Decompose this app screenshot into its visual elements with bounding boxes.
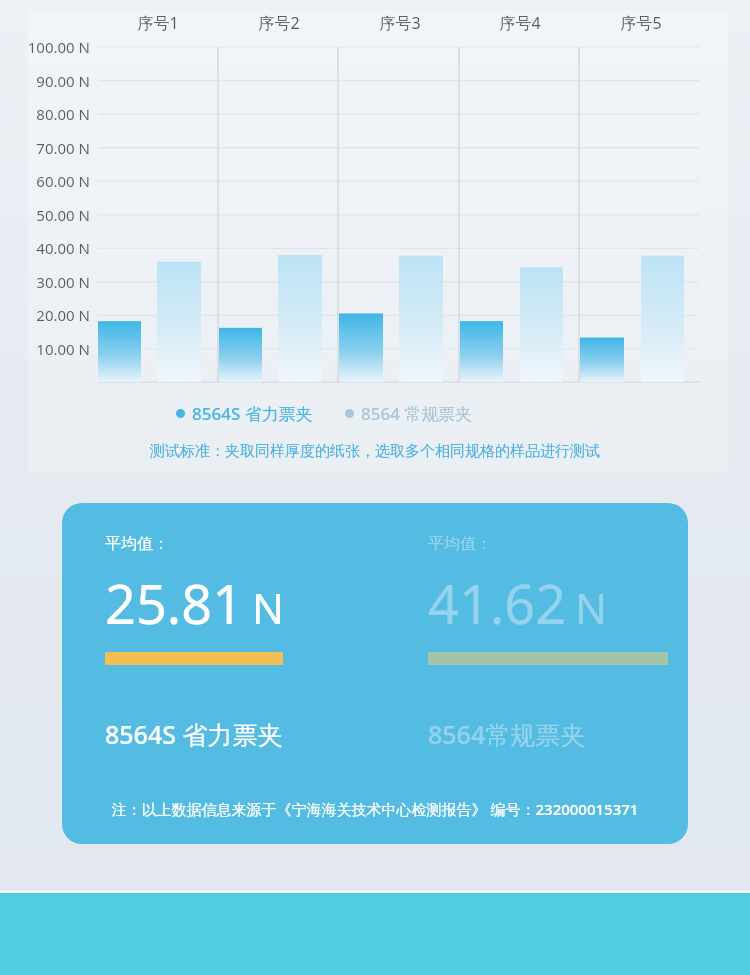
staticText: 90.00 N — [6, 71, 90, 91]
staticText: 41.62 — [428, 566, 567, 640]
staticText: 25.81 — [105, 566, 244, 640]
staticText: 50.00 N — [6, 205, 90, 225]
staticText: N — [575, 579, 607, 636]
staticText: 注：以上数据信息来源于《宁海海关技术中心检测报告》 编号：23200001537… — [62, 799, 688, 819]
staticText: 40.00 N — [6, 238, 90, 258]
staticText: 20.00 N — [6, 305, 90, 325]
staticText: 10.00 N — [6, 339, 90, 359]
staticText: 序号4 — [475, 12, 565, 34]
staticText: 平均值： — [105, 534, 169, 554]
staticText: 30.00 N — [6, 272, 90, 292]
staticText: 测试标准：夹取同样厚度的纸张，选取多个相同规格的样品进行测试 — [0, 442, 750, 461]
button[interactable]: 平均值： — [62, 503, 688, 844]
staticText: 8564常规票夹 — [428, 717, 586, 751]
staticText: 平均值： — [428, 534, 492, 554]
staticText: N — [252, 579, 284, 636]
staticText: 100.00 N — [6, 37, 90, 57]
staticText: 70.00 N — [6, 138, 90, 158]
staticText: 60.00 N — [6, 171, 90, 191]
staticText: 8564 常规票夹 — [361, 402, 473, 425]
staticText: 序号2 — [234, 12, 324, 34]
staticText: 序号1 — [113, 12, 203, 34]
staticText: 序号3 — [355, 12, 445, 34]
staticText: 8564S 省力票夹 — [105, 717, 283, 751]
staticText: 8564S 省力票夹 — [192, 402, 313, 425]
staticText: 80.00 N — [6, 104, 90, 124]
staticText: 序号5 — [596, 12, 686, 34]
